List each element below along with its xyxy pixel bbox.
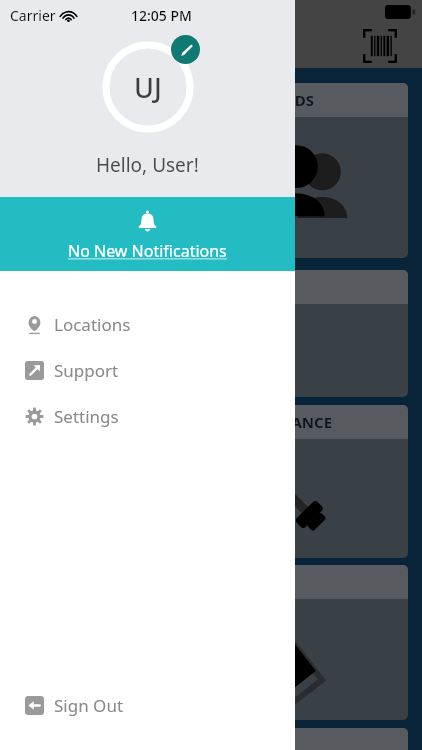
staticText: 12:05 PM (131, 6, 192, 25)
button[interactable]: E FRIENDS (228, 83, 408, 258)
button[interactable]: Locations (0, 301, 295, 347)
staticText: Carrier (10, 6, 56, 25)
button[interactable]: DEALS (228, 565, 408, 720)
staticText: UJ (134, 69, 162, 106)
staticText: Sign Out (54, 694, 124, 717)
button[interactable] (228, 728, 408, 750)
button[interactable]: Edit profile (171, 35, 200, 64)
staticText: Locations (54, 313, 131, 336)
button[interactable] (228, 270, 408, 397)
button[interactable]: Sign Out (0, 682, 295, 728)
button[interactable]: No New Notifications (0, 197, 295, 271)
staticText: Support (54, 359, 119, 382)
button[interactable]: Support (0, 347, 295, 393)
staticText: G GUIDANCE (238, 412, 333, 432)
staticText: Settings (54, 405, 119, 428)
button[interactable]: Settings (0, 393, 295, 439)
staticText: No New Notifications (68, 240, 227, 262)
button[interactable]: G GUIDANCE (228, 405, 408, 558)
button[interactable]: Scan barcode (358, 24, 402, 68)
staticText: Hello, User! (96, 152, 199, 178)
staticText: E FRIENDS (238, 90, 315, 110)
button[interactable]: Profile avatar (102, 41, 194, 133)
